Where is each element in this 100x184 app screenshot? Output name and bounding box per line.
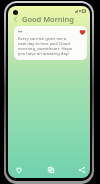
button[interactable]: Favorite (13, 164, 25, 176)
button[interactable]: Back (8, 14, 22, 25)
button[interactable]: Copy (45, 164, 57, 176)
button[interactable]: Share (76, 164, 88, 176)
button[interactable]: Every sunrise gives me a new day to love… (14, 26, 87, 60)
staticText: Good Morning Messages (22, 14, 90, 25)
staticText: Every sunrise gives me a new day to love… (18, 36, 74, 56)
